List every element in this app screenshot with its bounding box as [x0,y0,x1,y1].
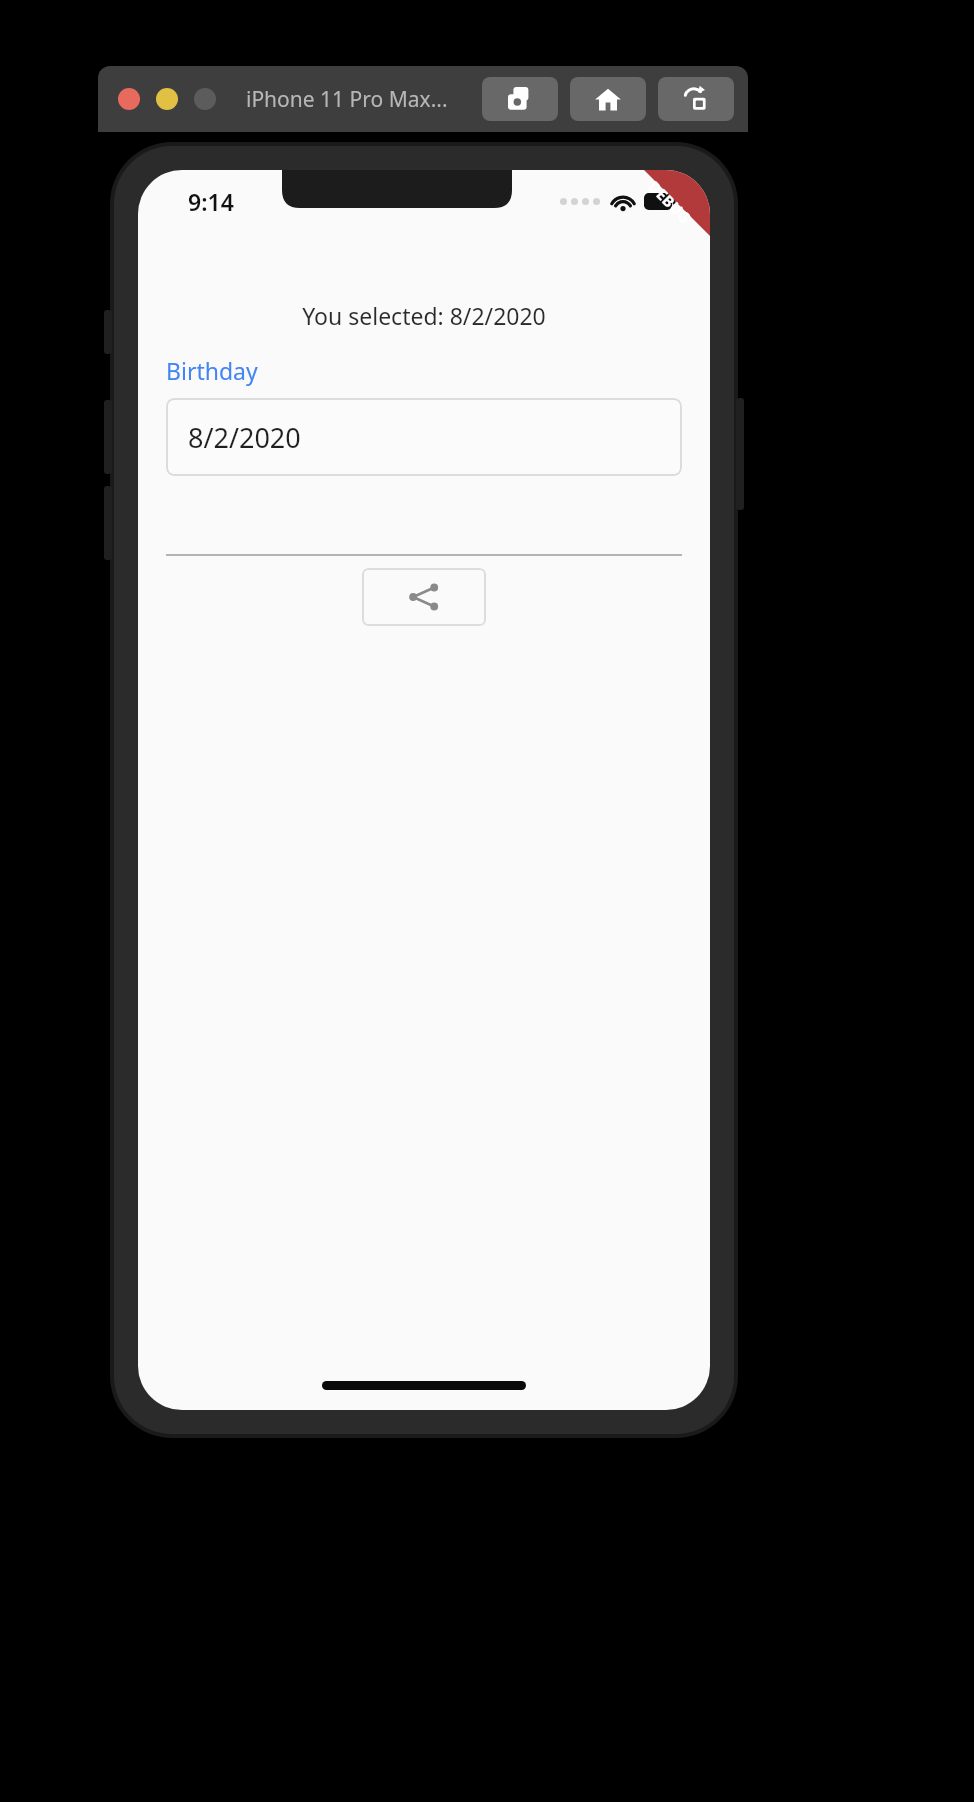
button[interactable]: Home [570,77,646,121]
button[interactable]: Zoom [194,88,216,110]
button[interactable]: Screenshot [482,77,558,121]
staticText: You selected: 8/2/2020 [166,300,682,331]
button[interactable]: Rotate [658,77,734,121]
staticText: 9:14 [188,186,234,217]
button[interactable]: Close [118,88,140,110]
staticText: 8/2/2020 [188,419,301,456]
button[interactable]: Minimize [156,88,178,110]
staticText: DEBUG [644,176,695,227]
staticText: Birthday [166,355,258,386]
button[interactable]: Share [362,568,486,626]
staticText: iPhone 11 Pro Max... [246,85,448,114]
button[interactable]: 8/2/2020 [166,398,682,476]
